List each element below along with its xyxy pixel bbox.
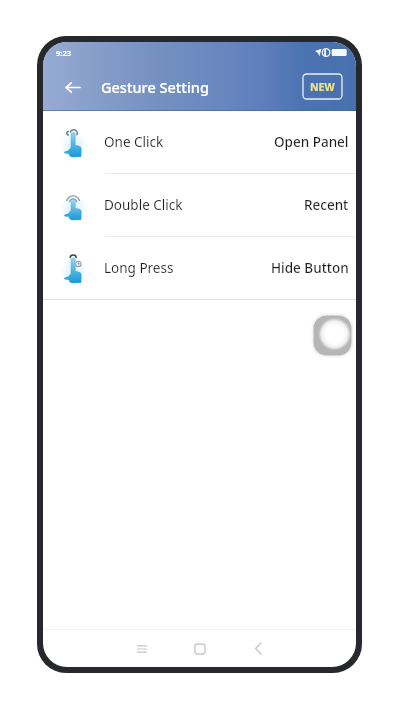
button[interactable]: Home <box>177 630 223 667</box>
button[interactable]: NEW <box>303 74 342 99</box>
staticText: NEW <box>310 80 335 94</box>
button[interactable]: Assistive touch button <box>311 313 354 358</box>
button[interactable]: Long Press <box>43 237 356 299</box>
staticText: Double Click <box>104 196 183 214</box>
staticText: 9:23 <box>56 48 71 58</box>
button[interactable]: One Click <box>43 111 356 173</box>
staticText: Hide Button <box>271 259 349 277</box>
button[interactable]: Back <box>60 75 84 99</box>
button[interactable]: Double Click <box>43 174 356 236</box>
staticText: Recent <box>304 196 349 214</box>
staticText: Long Press <box>104 259 174 277</box>
button[interactable]: Back <box>235 630 281 667</box>
staticText: One Click <box>104 133 164 151</box>
staticText: Gesture Setting <box>101 77 209 97</box>
staticText: Open Panel <box>274 133 349 151</box>
button[interactable]: Recent apps <box>119 630 165 667</box>
